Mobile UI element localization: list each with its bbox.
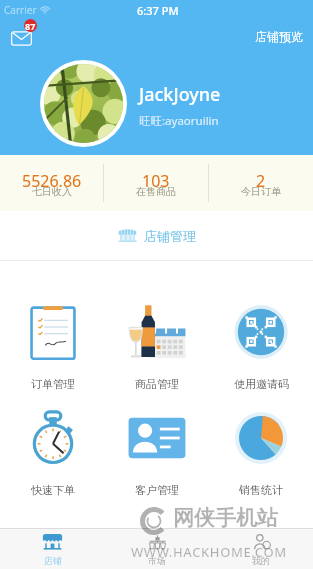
- staticText: 87: [25, 20, 36, 32]
- button[interactable]: 快速下单: [0, 409, 105, 497]
- staticText: 七日收入: [32, 185, 72, 198]
- staticText: Carrier: [4, 3, 37, 17]
- staticText: 5526.86: [22, 170, 82, 192]
- staticText: 使用邀请码: [234, 377, 289, 391]
- button[interactable]: 103: [104, 155, 208, 211]
- button[interactable]: 我的: [209, 529, 313, 569]
- staticText: 商品管理: [135, 377, 179, 391]
- staticText: 网侠手机站: [173, 505, 278, 531]
- button[interactable]: 店铺管理: [0, 211, 313, 260]
- staticText: JackJoyne: [139, 82, 221, 107]
- button[interactable]: Messages: [9, 19, 40, 50]
- button[interactable]: Avatar: [40, 60, 127, 147]
- button[interactable]: 销售统计: [209, 409, 313, 497]
- staticText: 快速下单: [31, 483, 75, 497]
- staticText: 我的: [252, 555, 270, 566]
- staticText: 店铺管理: [144, 228, 196, 244]
- staticText: 市场: [148, 555, 166, 566]
- staticText: 103: [142, 170, 170, 192]
- staticText: 客户管理: [135, 483, 179, 497]
- staticText: 订单管理: [31, 377, 75, 391]
- button[interactable]: 5526.86: [0, 155, 103, 211]
- staticText: 6:37 PM: [137, 3, 179, 18]
- staticText: WWW.HACKHOME.COM: [131, 543, 287, 561]
- staticText: 店铺预览: [255, 29, 303, 44]
- button[interactable]: 商品管理: [105, 303, 209, 391]
- button[interactable]: 店铺: [0, 529, 105, 569]
- button[interactable]: 2: [209, 155, 313, 211]
- staticText: 在售商品: [136, 185, 176, 198]
- button[interactable]: 订单管理: [0, 303, 105, 391]
- button[interactable]: 店铺预览: [245, 23, 313, 50]
- staticText: 销售统计: [239, 483, 283, 497]
- staticText: 今日订单: [241, 185, 281, 198]
- staticText: 店铺: [44, 555, 62, 566]
- button[interactable]: 市场: [105, 529, 209, 569]
- staticText: 旺旺:ayaoruilin: [139, 113, 219, 129]
- button[interactable]: 使用邀请码: [209, 303, 313, 391]
- button[interactable]: 客户管理: [105, 409, 209, 497]
- staticText: 2: [256, 170, 266, 192]
